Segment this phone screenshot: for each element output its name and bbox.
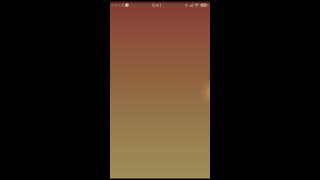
staticText: 9:41 bbox=[152, 2, 162, 9]
button[interactable]: Cellular signal, Wi‑Fi and battery statu… bbox=[185, 3, 210, 7]
button[interactable]: Notifications bbox=[110, 3, 128, 7]
button[interactable]: 9:41 bbox=[152, 2, 162, 9]
